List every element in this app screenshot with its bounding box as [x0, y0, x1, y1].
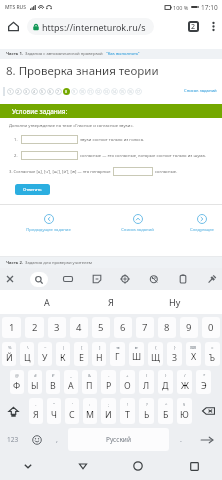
staticText: 4 — [76, 321, 82, 334]
button[interactable]: 9 — [71, 88, 78, 95]
button[interactable]: [ — [74, 342, 88, 366]
button[interactable]: А — [15, 290, 79, 314]
button[interactable]: @ — [10, 370, 24, 394]
button[interactable]: Text field — [113, 167, 153, 176]
button[interactable]: ; — [101, 398, 116, 424]
button[interactable]: Clipboard — [174, 270, 192, 288]
button[interactable]: & — [82, 370, 97, 394]
button[interactable]: : — [83, 398, 97, 424]
button[interactable]: 16 — [127, 88, 134, 95]
button[interactable]: Comma — [50, 428, 64, 451]
button[interactable]: 6 — [114, 317, 132, 338]
button[interactable]: Search — [30, 270, 48, 288]
button[interactable]: 4 — [31, 88, 38, 95]
button[interactable]: 2 — [25, 317, 44, 338]
button[interactable]: 8 — [158, 317, 176, 338]
button[interactable]: Close — [1, 270, 19, 288]
button[interactable]: 3 — [23, 88, 30, 95]
staticText: # — [34, 373, 37, 379]
button[interactable]: 15 — [119, 88, 126, 95]
button[interactable]: " — [47, 398, 61, 424]
staticText: Русский — [106, 435, 131, 444]
button[interactable]: 3 — [48, 317, 66, 338]
button[interactable]: ( — [139, 370, 154, 394]
button[interactable]: ₽ — [46, 370, 60, 394]
button[interactable]: # — [28, 370, 42, 394]
button[interactable]: + — [120, 370, 135, 394]
button[interactable]: { — [148, 342, 163, 366]
button[interactable]: } — [167, 342, 182, 366]
staticText: 1 — [9, 89, 12, 94]
button[interactable]: - — [29, 398, 43, 424]
button[interactable]: _ — [64, 370, 78, 394]
button[interactable]: More options — [204, 14, 222, 38]
button[interactable]: § — [177, 398, 192, 424]
staticText: ' — [72, 402, 73, 408]
button[interactable]: 17 — [135, 88, 142, 95]
button[interactable]: Emoji — [28, 428, 46, 451]
button[interactable]: 14 — [111, 88, 118, 95]
button[interactable]: Shift — [2, 398, 25, 424]
button[interactable]: 1 — [7, 88, 14, 95]
staticText: Список заданий — [121, 227, 154, 233]
button[interactable]: Stickers — [88, 270, 106, 288]
button[interactable]: 6 — [47, 88, 54, 95]
button[interactable]: https://interneturok.ru/s — [27, 18, 154, 35]
button[interactable]: ? — [139, 398, 154, 424]
button[interactable]: Text field — [21, 135, 78, 144]
button[interactable]: 8 — [63, 88, 70, 95]
button[interactable]: Русский — [68, 428, 169, 451]
button[interactable]: Ответить — [15, 184, 50, 195]
button[interactable]: ⌨ — [186, 342, 201, 366]
button[interactable]: 10 — [79, 88, 86, 95]
button[interactable]: Я — [79, 290, 143, 314]
button[interactable]: Home — [110, 452, 166, 480]
button[interactable]: Home — [0, 14, 27, 38]
button[interactable]: ~ — [38, 342, 52, 366]
button[interactable]: ' — [65, 398, 79, 424]
button[interactable]: Список заданий — [93, 214, 182, 233]
button[interactable]: ! — [120, 398, 135, 424]
button[interactable]: Следующее задание — [182, 214, 222, 233]
staticText: Й — [6, 352, 13, 364]
button[interactable]: Enter — [193, 428, 220, 451]
button[interactable]: Numbers and symbols — [2, 428, 24, 451]
button[interactable]: Back — [55, 452, 110, 480]
button[interactable]: ► — [129, 342, 144, 366]
button[interactable]: 12 — [95, 88, 102, 95]
button[interactable]: % — [2, 342, 16, 366]
button[interactable]: 1 — [2, 317, 21, 338]
button[interactable]: Themes — [145, 270, 163, 288]
button[interactable]: ◄ — [110, 342, 125, 366]
button[interactable]: Recent apps — [166, 452, 222, 480]
button[interactable]: ] — [92, 342, 106, 366]
button[interactable]: 0 — [202, 317, 220, 338]
button[interactable]: Settings — [116, 270, 134, 288]
button[interactable]: | — [56, 342, 70, 366]
button[interactable]: - — [101, 370, 116, 394]
button[interactable]: Hide keyboard — [0, 452, 55, 480]
button[interactable]: ) — [158, 370, 173, 394]
button[interactable]: 2 — [15, 88, 22, 95]
button[interactable]: 9 — [180, 317, 198, 338]
button[interactable]: = — [205, 342, 220, 366]
button[interactable]: Предыдущее задание — [4, 214, 93, 233]
button[interactable]: 5 — [92, 317, 110, 338]
button[interactable]: 7 — [136, 317, 154, 338]
button[interactable]: 7 — [55, 88, 62, 95]
button[interactable]: / — [177, 370, 192, 394]
button[interactable]: Text field — [21, 151, 78, 160]
button[interactable]: ^ — [158, 398, 173, 424]
button[interactable]: Backspace — [196, 398, 220, 424]
button[interactable]: GIF — [59, 270, 77, 288]
button[interactable]: 13 — [103, 88, 110, 95]
button[interactable]: \ — [20, 342, 34, 366]
button[interactable]: Ну — [143, 290, 207, 314]
button[interactable]: * — [196, 370, 211, 394]
button[interactable]: Tabs — [182, 14, 204, 38]
button[interactable]: 11 — [87, 88, 94, 95]
button[interactable]: 5 — [39, 88, 46, 95]
button[interactable]: 4 — [70, 317, 88, 338]
button[interactable]: Pin — [203, 270, 221, 288]
